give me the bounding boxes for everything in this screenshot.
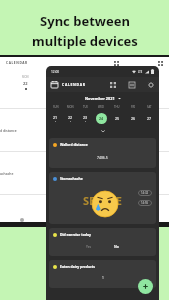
button[interactable]: Calendar [51, 81, 58, 88]
button[interactable]: 25 [109, 112, 125, 125]
button[interactable]: 24 [93, 112, 109, 125]
staticText: CALENDAR [6, 61, 28, 65]
button[interactable]: Stomachache [49, 172, 156, 224]
staticText: multiple devices [32, 32, 138, 50]
staticText: 1 [102, 276, 104, 280]
staticText: THU [114, 105, 120, 109]
button[interactable]: Grid layout [109, 81, 116, 88]
staticText: WED [98, 105, 104, 109]
staticText: Sync between [40, 12, 130, 30]
staticText: LTE [138, 70, 143, 74]
staticText: Yes [86, 245, 92, 249]
staticText: 23 [83, 115, 88, 120]
staticText: 25 [115, 116, 120, 121]
staticText: 22 [68, 115, 73, 120]
staticText: No [114, 244, 119, 249]
staticText: 24 [99, 116, 104, 121]
staticText: MON [67, 105, 74, 109]
button[interactable]: 26 [125, 112, 141, 125]
button[interactable]: Walked distance [49, 138, 156, 168]
staticText: SUN [53, 105, 59, 109]
staticText: achache [0, 171, 14, 176]
staticText: Eaten dairy products [60, 264, 96, 269]
staticText: 27 [147, 116, 152, 121]
button[interactable]: List layout [128, 81, 135, 88]
button[interactable]: 14:32 [141, 191, 149, 195]
staticText: Stomachache [60, 176, 83, 181]
button[interactable]: 23 [78, 112, 93, 125]
button[interactable]: 27 [141, 112, 157, 125]
staticText: 14:32 [141, 191, 149, 195]
button[interactable]: Expand calendar [46, 125, 159, 136]
button[interactable]: Grid view [113, 60, 119, 66]
staticText: MON [22, 75, 29, 79]
staticText: 14:55 [141, 201, 149, 205]
staticText: November 2021 [85, 96, 115, 101]
staticText: d distance [0, 128, 17, 133]
staticText: CALENDAR [62, 82, 86, 87]
staticText: 22 [23, 81, 28, 86]
button[interactable]: 14:55 [141, 201, 149, 205]
button[interactable]: 22 [63, 112, 78, 125]
staticText: 12:00 [51, 70, 60, 74]
staticText: Walked distance [60, 142, 88, 147]
staticText: 7406.5 [97, 155, 108, 160]
staticText: SEVERE [83, 193, 122, 208]
staticText: Did exercise today [60, 232, 91, 237]
button[interactable]: Settings [147, 81, 154, 88]
staticText: FRI [131, 105, 136, 109]
staticText: SAT [147, 105, 152, 109]
button[interactable]: Add entry [138, 279, 153, 294]
button[interactable]: Menu [157, 60, 163, 66]
button[interactable]: Eaten dairy products [49, 260, 156, 288]
staticText: 26 [131, 116, 136, 121]
button[interactable]: Did exercise today [49, 228, 156, 256]
button[interactable]: 21 [48, 112, 63, 125]
staticText: TUE [83, 105, 88, 109]
staticText: 21 [53, 115, 58, 120]
button[interactable]: November 2021 [46, 92, 159, 105]
